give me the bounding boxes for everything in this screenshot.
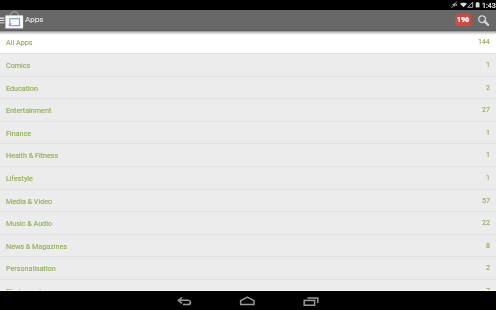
staticText: 1	[486, 129, 490, 137]
button[interactable]: Search	[474, 10, 494, 31]
button[interactable]: Media & Video	[0, 189, 496, 212]
staticText: All Apps	[6, 38, 33, 46]
button[interactable]: 196 updates	[455, 14, 471, 26]
button[interactable]: Health & Fitness	[0, 143, 496, 166]
staticText: 2	[486, 264, 490, 272]
staticText: 57	[482, 197, 490, 205]
staticText: Apps	[25, 15, 44, 24]
staticText: News & Magazines	[6, 242, 68, 250]
button[interactable]: Personalisation	[0, 256, 496, 279]
staticText: Education	[6, 84, 38, 92]
staticText: 1	[486, 174, 490, 182]
staticText: Personalisation	[6, 264, 56, 272]
staticText: Lifestyle	[6, 174, 33, 182]
staticText: 1	[486, 61, 490, 69]
staticText: Health & Fitness	[6, 151, 59, 159]
staticText: Media & Video	[6, 197, 53, 205]
staticText: Entertainment	[6, 106, 52, 114]
staticText: 22	[482, 219, 490, 227]
button[interactable]: Photography	[0, 279, 496, 291]
staticText: 1:43	[482, 1, 496, 9]
button[interactable]: News & Magazines	[0, 234, 496, 257]
button[interactable]: Entertainment	[0, 98, 496, 121]
staticText: 196	[457, 16, 470, 24]
staticText: Finance	[6, 129, 32, 137]
button[interactable]: Lifestyle	[0, 166, 496, 189]
staticText: 2	[486, 84, 490, 92]
button[interactable]: All Apps	[0, 31, 496, 53]
staticText: 7	[486, 287, 490, 291]
staticText: 1	[486, 151, 490, 159]
button[interactable]: Finance	[0, 121, 496, 144]
button[interactable]: Open navigation drawer	[0, 10, 6, 31]
staticText: Music & Audio	[6, 219, 53, 227]
button[interactable]: Recent apps	[288, 291, 334, 310]
staticText: 27	[482, 106, 490, 114]
button[interactable]: Music & Audio	[0, 211, 496, 234]
button[interactable]: Education	[0, 76, 496, 99]
staticText: Photography	[6, 287, 47, 291]
button[interactable]: Comics	[0, 53, 496, 76]
staticText: Comics	[6, 61, 31, 69]
staticText: 8	[486, 242, 490, 250]
button[interactable]: Back	[158, 291, 204, 310]
staticText: 144	[478, 38, 490, 46]
button[interactable]: Home	[224, 291, 270, 310]
